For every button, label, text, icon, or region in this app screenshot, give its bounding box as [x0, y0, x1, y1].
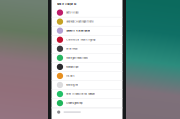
staticText: Bank of Udaipur ka: [57, 3, 76, 5]
button[interactable]: River in hand the ext nakkam: [51, 90, 122, 99]
staticText: River in hand the ext nakkam: [66, 93, 95, 95]
button[interactable]: Morning ver: [51, 81, 122, 90]
button[interactable]: Betty Video: [51, 8, 122, 17]
staticText: Mandala que: [66, 65, 78, 68]
staticText: Ayurvedic Hastingen tremo: [66, 20, 93, 23]
button[interactable]: Undersigned exp: [51, 99, 122, 108]
staticText: Sanskriti Kalyan darbhi: [66, 29, 90, 32]
staticText: Commercial Theatre regmap: [66, 38, 95, 41]
button[interactable]: Commercial Theatre regmap: [51, 35, 122, 44]
staticText: Inc Ba s: [66, 75, 74, 77]
staticText: Morning ver: [66, 84, 78, 86]
button[interactable]: Sanskriti Kalyan darbhi: [51, 26, 122, 35]
button[interactable]: Mandala que: [51, 63, 122, 72]
staticText: Brian Webb: [66, 47, 77, 50]
button[interactable]: Brian Webb: [51, 44, 122, 53]
staticText: Betty Video: [66, 11, 78, 14]
button[interactable]: Watergate Road found: [51, 53, 122, 62]
button[interactable]: Inc Ba s: [51, 72, 122, 81]
staticText: Undersigned exp: [66, 102, 82, 104]
button[interactable]: Search: [51, 108, 122, 116]
staticText: Watergate Road found: [66, 56, 87, 59]
button[interactable]: Ayurvedic Hastingen tremo: [51, 17, 122, 26]
